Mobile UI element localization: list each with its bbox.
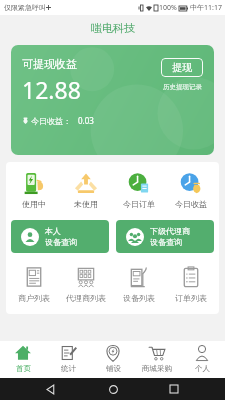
staticText: 使用中 — [22, 199, 46, 209]
staticText: 0.03 — [78, 115, 94, 126]
button[interactable]: 使用中 — [9, 170, 59, 210]
button[interactable]: 设备列表 — [114, 264, 164, 304]
staticText: 统计 — [61, 364, 76, 373]
button[interactable]: 统计 — [46, 341, 90, 378]
staticText: 嗤电科技 — [91, 21, 135, 35]
button[interactable]: 提现 — [161, 58, 203, 77]
staticText: 首页 — [16, 364, 31, 373]
button[interactable]: 未使用 — [61, 170, 111, 210]
staticText: 商户列表 — [18, 293, 50, 303]
staticText: 中午11:17 — [190, 3, 222, 13]
staticText: 100% — [159, 3, 177, 13]
staticText: 个人 — [195, 364, 210, 373]
staticText: 提现 — [172, 61, 192, 74]
staticText: 今日收益： — [31, 116, 71, 126]
button[interactable]: 商城采购 — [135, 341, 179, 378]
button[interactable]: 历史提现记录 — [163, 83, 202, 91]
other: 首页 — [14, 344, 32, 362]
staticText: 设备列表 — [123, 293, 155, 303]
staticText: 12.88 — [22, 74, 81, 105]
other: 商城采购 — [148, 344, 166, 362]
other: 统计 — [59, 344, 77, 362]
staticText: 商城采购 — [142, 364, 172, 373]
button[interactable]: 铺设 — [91, 341, 135, 378]
other: 个人 — [193, 344, 211, 362]
button[interactable]: 商户列表 — [9, 264, 59, 304]
staticText: 未使用 — [74, 199, 98, 209]
staticText: 今日订单 — [123, 199, 155, 209]
button[interactable]: 订单列表 — [166, 264, 216, 304]
other: 铺设 — [104, 344, 122, 362]
button[interactable]: Recents — [163, 378, 185, 400]
button[interactable]: 本人 — [11, 220, 109, 253]
button[interactable]: Back — [40, 378, 62, 400]
staticText: 设备查询 — [150, 237, 182, 247]
button[interactable]: 下级代理商 — [116, 220, 214, 253]
staticText: 铺设 — [106, 364, 121, 373]
staticText: 可提现收益 — [22, 57, 77, 71]
button[interactable]: 今日收益 — [166, 170, 216, 210]
staticText: 仅限紧急呼叫 — [4, 3, 46, 12]
staticText: 历史提现记录 — [163, 83, 202, 91]
button[interactable]: 首页 — [1, 341, 45, 378]
staticText: 代理商列表 — [66, 293, 106, 303]
staticText: 订单列表 — [175, 293, 207, 303]
staticText: 设备查询 — [45, 237, 77, 247]
staticText: 下级代理商 — [150, 226, 190, 236]
button[interactable]: Home — [102, 378, 124, 400]
staticText: 今日收益 — [175, 199, 207, 209]
button[interactable]: 今日订单 — [114, 170, 164, 210]
button[interactable]: 代理商列表 — [61, 264, 111, 304]
button[interactable]: 个人 — [180, 341, 224, 378]
staticText: 本人 — [45, 226, 61, 236]
